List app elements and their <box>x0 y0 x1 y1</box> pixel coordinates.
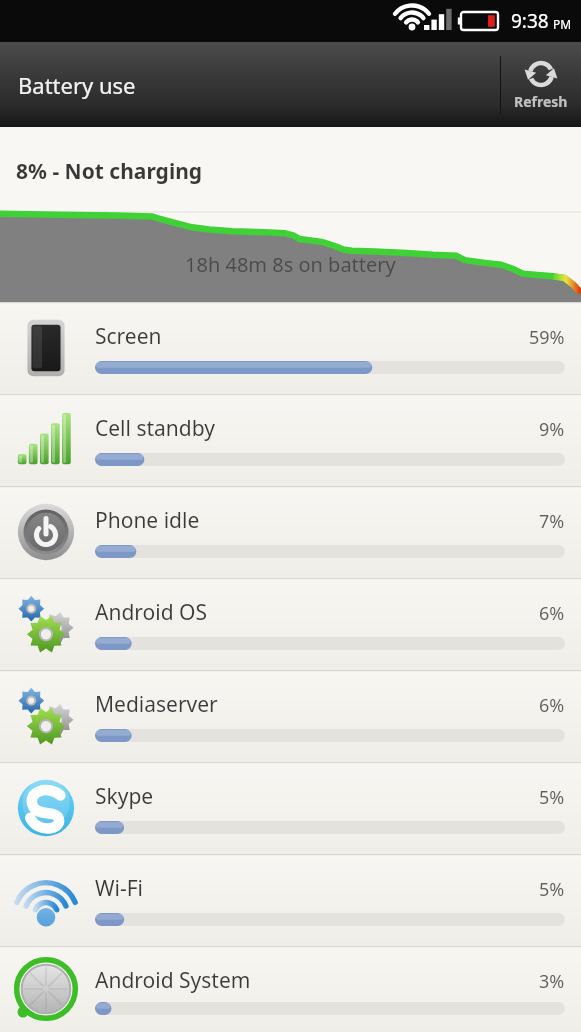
staticText: 5% <box>539 877 565 902</box>
button[interactable]: Cell standby <box>0 394 581 486</box>
button[interactable]: Refresh <box>501 42 581 127</box>
staticText: Refresh <box>514 92 568 111</box>
staticText: Phone idle <box>95 506 200 535</box>
staticText: 9% <box>539 417 565 442</box>
staticText: 9:38 <box>511 8 549 34</box>
staticText: 6% <box>539 601 565 626</box>
staticText: 59% <box>529 325 565 350</box>
staticText: Cell standby <box>95 414 215 443</box>
staticText: 6% <box>539 693 565 718</box>
staticText: 18h 48m 8s on battery <box>185 251 396 278</box>
button[interactable]: Screen <box>0 302 581 394</box>
staticText: Android OS <box>95 598 207 627</box>
staticText: PM <box>553 16 572 32</box>
button[interactable]: Wi-Fi <box>0 854 581 946</box>
staticText: Screen <box>95 322 162 351</box>
staticText: 5% <box>539 785 565 810</box>
button[interactable]: Android System <box>0 946 581 1032</box>
staticText: 7% <box>539 509 565 534</box>
button[interactable]: Mediaserver <box>0 670 581 762</box>
button[interactable]: Skype <box>0 762 581 854</box>
staticText: Wi-Fi <box>95 874 144 903</box>
button[interactable]: Android OS <box>0 578 581 670</box>
staticText: Android System <box>95 966 251 995</box>
staticText: Mediaserver <box>95 690 218 719</box>
staticText: 3% <box>539 969 565 994</box>
staticText: 8% - Not charging <box>16 157 203 186</box>
staticText: Battery use <box>18 70 136 100</box>
staticText: Skype <box>95 782 154 811</box>
button[interactable]: Phone idle <box>0 486 581 578</box>
